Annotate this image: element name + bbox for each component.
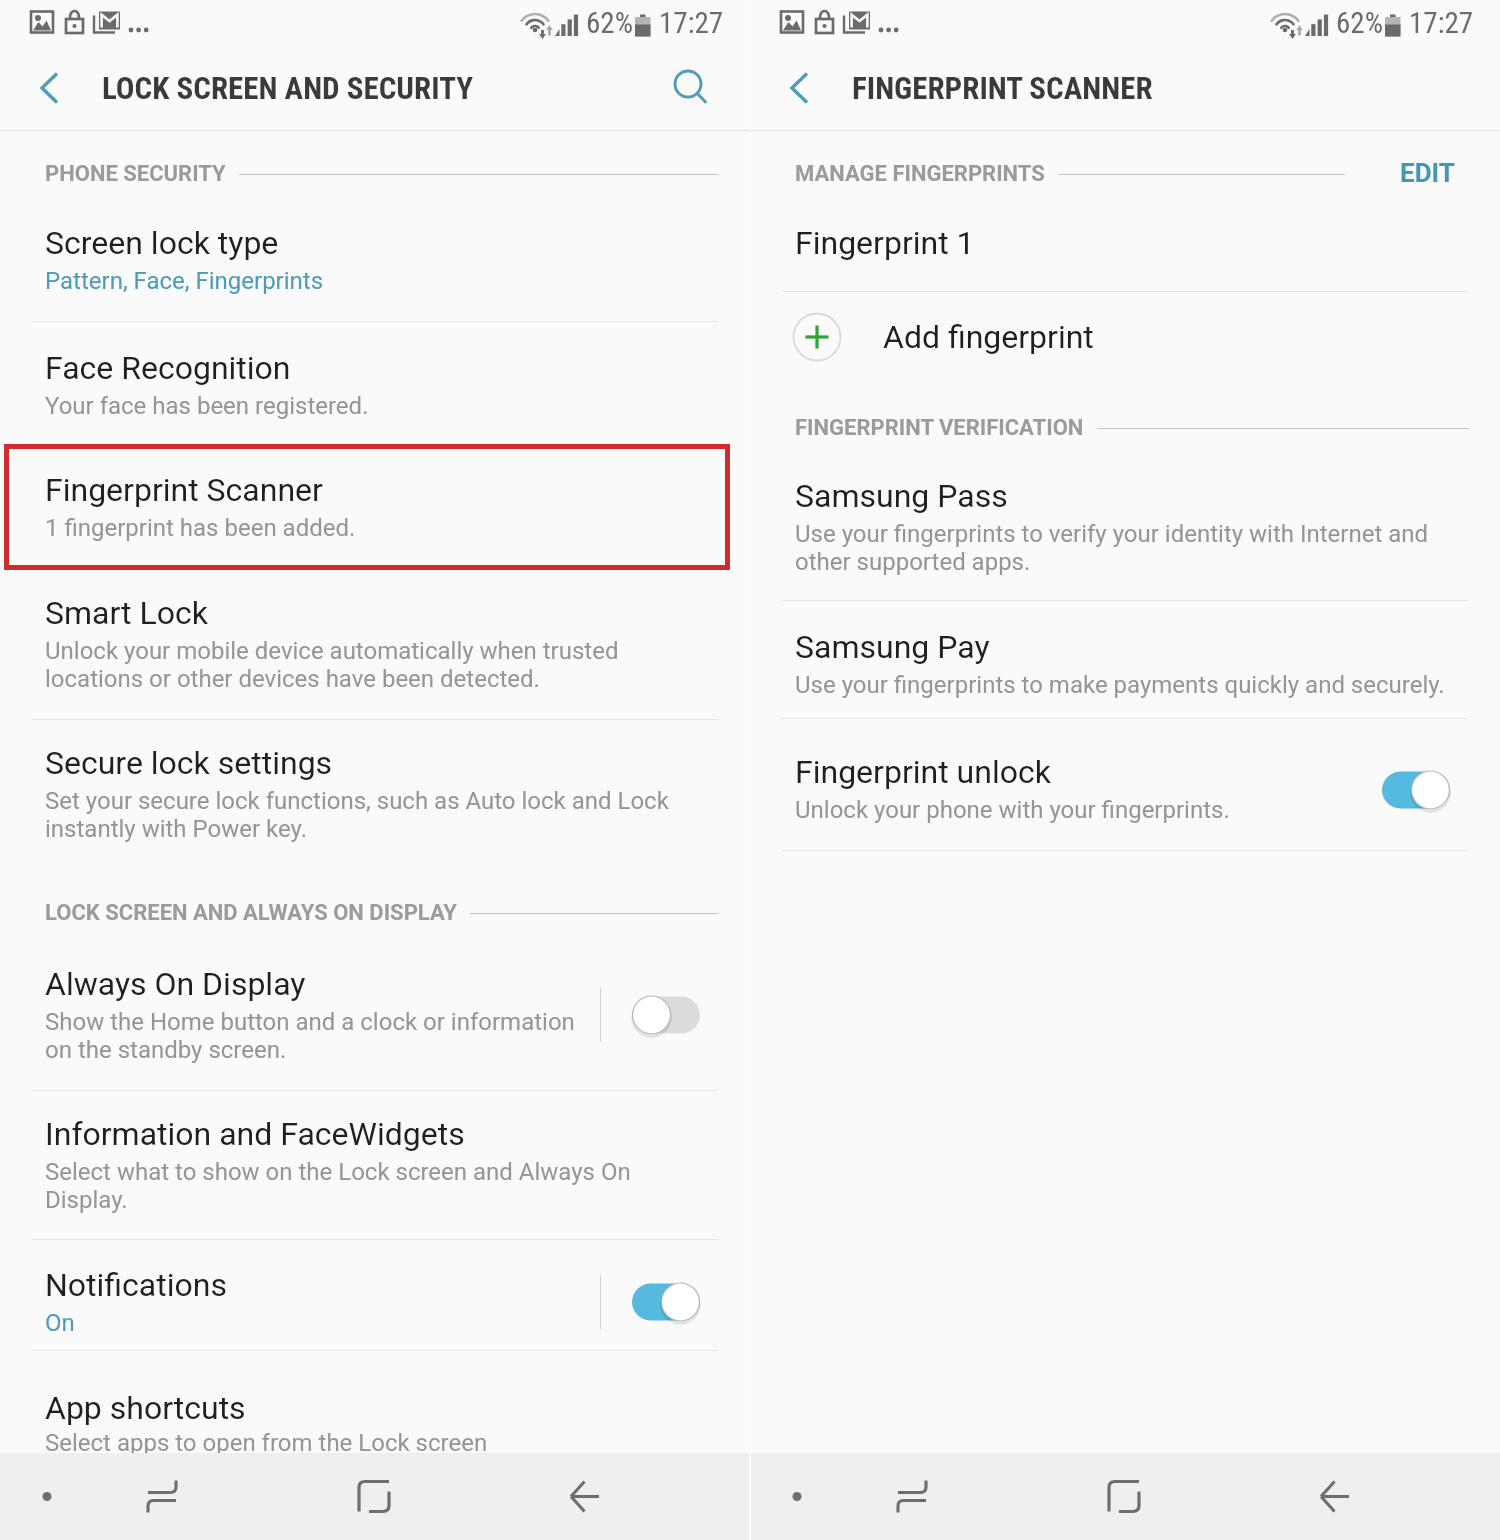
staticText: Fingerprint 1	[795, 224, 975, 262]
button[interactable]	[0, 1240, 750, 1350]
staticText: Screen lock type	[45, 224, 279, 262]
staticText: Samsung Pass	[795, 477, 1008, 515]
button[interactable]	[0, 1091, 750, 1239]
staticText: MANAGE FINGERPRINTS	[795, 161, 1045, 187]
button[interactable]: Assistant	[754, 1453, 840, 1540]
staticText: 17:27	[659, 6, 724, 40]
staticText: LOCK SCREEN AND SECURITY	[102, 70, 474, 106]
button[interactable]	[0, 940, 750, 1090]
button[interactable]: Switch on	[632, 1280, 700, 1324]
button[interactable]	[0, 1351, 750, 1452]
staticText: Smart Lock	[45, 594, 208, 632]
button[interactable]: Switch off	[632, 993, 700, 1037]
button[interactable]: Home	[1081, 1453, 1167, 1540]
staticText: FINGERPRINT VERIFICATION	[795, 415, 1084, 441]
staticText: Select apps to open from the Lock screen	[45, 1429, 488, 1457]
button[interactable]: Assistant	[4, 1453, 90, 1540]
button[interactable]: Home	[331, 1453, 417, 1540]
staticText: Your face has been registered.	[45, 392, 369, 420]
staticText: 17:27	[1409, 6, 1474, 40]
staticText: 62%	[586, 6, 633, 40]
button[interactable]: Navigate up	[12, 57, 76, 121]
staticText: Secure lock settings	[45, 744, 333, 782]
staticText: Always On Display	[45, 965, 306, 1003]
button[interactable]	[0, 444, 750, 568]
staticText: Information and FaceWidgets	[45, 1115, 465, 1153]
staticText: Add fingerprint	[883, 318, 1094, 356]
button[interactable]: Recent apps	[119, 1453, 205, 1540]
button[interactable]	[750, 601, 1500, 718]
staticText: FINGERPRINT SCANNER	[852, 70, 1153, 106]
button[interactable]: Navigate up	[762, 57, 826, 121]
staticText: Use your fingerprints to make payments q…	[795, 671, 1445, 699]
staticText: EDIT	[1400, 158, 1455, 188]
button[interactable]	[0, 568, 750, 719]
staticText: Samsung Pay	[795, 628, 990, 666]
button[interactable]	[0, 322, 750, 444]
staticText: App shortcuts	[45, 1389, 246, 1427]
button[interactable]	[750, 200, 1500, 291]
staticText: Unlock your mobile device automatically …	[45, 637, 619, 693]
staticText: Unlock your phone with your fingerprints…	[795, 796, 1230, 824]
button[interactable]: EDIT	[1400, 158, 1455, 188]
button[interactable]: Search	[656, 57, 720, 121]
button[interactable]: Back	[542, 1453, 628, 1540]
staticText: Show the Home button and a clock or info…	[45, 1008, 575, 1064]
staticText: 1 fingerprint has been added.	[45, 514, 356, 542]
staticText: Set your secure lock functions, such as …	[45, 787, 669, 843]
staticText: Select what to show on the Lock screen a…	[45, 1158, 631, 1214]
staticText: On	[45, 1309, 75, 1337]
button[interactable]: Add fingerprint	[750, 292, 1500, 382]
button[interactable]: Recent apps	[869, 1453, 955, 1540]
staticText: Pattern, Face, Fingerprints	[45, 267, 324, 295]
staticText: Use your fingerprints to verify your ide…	[795, 520, 1429, 576]
button[interactable]	[750, 719, 1500, 851]
staticText: Face Recognition	[45, 349, 291, 387]
button[interactable]	[0, 720, 750, 870]
button[interactable]: Switch on	[1382, 768, 1450, 812]
button[interactable]: Back	[1292, 1453, 1378, 1540]
button[interactable]	[750, 455, 1500, 600]
button[interactable]	[0, 200, 750, 321]
staticText: LOCK SCREEN AND ALWAYS ON DISPLAY	[45, 900, 457, 926]
staticText: Notifications	[45, 1266, 227, 1304]
staticText: 62%	[1336, 6, 1383, 40]
staticText: PHONE SECURITY	[45, 161, 226, 187]
staticText: Fingerprint unlock	[795, 753, 1051, 791]
staticText: Fingerprint Scanner	[45, 471, 323, 509]
